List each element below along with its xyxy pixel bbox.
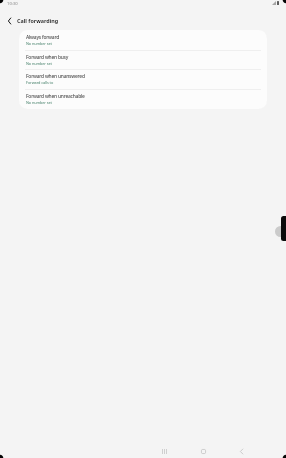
- staticText: No number set: [26, 41, 52, 46]
- button[interactable]: Forward when unanswered: [19, 69, 267, 89]
- staticText: Always forward: [26, 34, 59, 41]
- button[interactable]: Back: [232, 442, 250, 458]
- button[interactable]: Home: [194, 442, 212, 458]
- button[interactable]: Forward when busy: [19, 50, 267, 70]
- staticText: Forward when busy: [26, 54, 69, 61]
- button[interactable]: Edge panel handle: [281, 216, 286, 241]
- staticText: 10:30: [7, 1, 18, 7]
- button[interactable]: Navigate up: [2, 12, 17, 30]
- button[interactable]: Always forward: [19, 30, 267, 50]
- button[interactable]: Forward when unreachable: [19, 89, 267, 109]
- staticText: Forward when unreachable: [26, 93, 85, 100]
- staticText: No number set: [26, 61, 52, 66]
- staticText: Call forwarding: [17, 17, 59, 24]
- staticText: Forward when unanswered: [26, 73, 85, 80]
- staticText: No number set: [26, 100, 52, 105]
- button[interactable]: Recent apps: [155, 442, 173, 458]
- staticText: Forward calls to: [26, 80, 54, 85]
